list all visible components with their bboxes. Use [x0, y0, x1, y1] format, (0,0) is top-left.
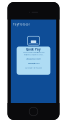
staticText: PayProtocol — [13, 23, 30, 26]
staticText: Choose how you want to pay and — [22, 52, 44, 53]
staticText: Maybe later — terms apply — [25, 67, 42, 69]
button[interactable]: Maybe later — terms apply — [17, 67, 50, 69]
button[interactable]: Link a bank account — [17, 58, 50, 60]
staticText: Add a debit card — [27, 63, 39, 64]
staticText: Link a bank account — [26, 58, 41, 60]
button[interactable]: Add a debit card — [17, 62, 50, 65]
staticText: we'll get you set up in seconds. — [24, 54, 43, 56]
staticText: Quick Pay — [26, 48, 41, 51]
